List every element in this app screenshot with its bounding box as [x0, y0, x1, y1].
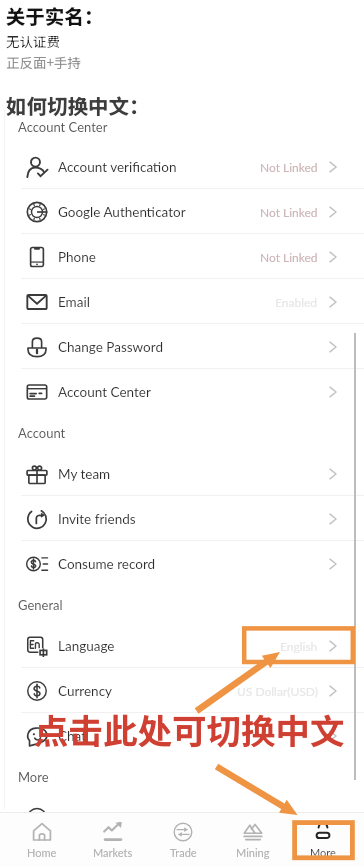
button[interactable]: Google Authenticator — [0, 189, 364, 234]
staticText: Phone — [58, 249, 96, 265]
button[interactable]: Chat — [0, 713, 364, 758]
staticText: 点击此处可切换中文 — [34, 704, 345, 754]
staticText: About — [58, 810, 95, 826]
staticText: Account Center — [58, 384, 151, 400]
staticText: Home — [27, 846, 57, 859]
staticText: Change Password — [58, 339, 163, 355]
staticText: More — [18, 769, 49, 785]
button[interactable]: Trade — [148, 813, 218, 867]
button[interactable]: Account verification — [0, 144, 364, 189]
staticText: Language — [58, 638, 115, 654]
staticText: Not Linked — [260, 250, 318, 264]
button[interactable]: Markets — [77, 813, 148, 867]
staticText: Account — [18, 425, 66, 441]
staticText: Not Linked — [260, 160, 318, 174]
button[interactable]: Currency — [0, 668, 364, 713]
staticText: Invite friends — [58, 511, 136, 527]
staticText: Account Center — [18, 119, 108, 135]
staticText: Markets — [93, 846, 133, 859]
button[interactable]: Account Center — [0, 369, 364, 414]
staticText: Google Authenticator — [58, 204, 186, 220]
staticText: Consume record — [58, 556, 156, 572]
staticText: English — [280, 639, 318, 653]
staticText: Not Linked — [260, 205, 318, 219]
staticText: Email — [58, 294, 90, 310]
staticText: 无认证费 — [6, 31, 60, 51]
button[interactable]: Email — [0, 279, 364, 324]
staticText: My team — [58, 466, 111, 482]
button[interactable]: Mining — [218, 813, 288, 867]
staticText: US Dollar(USD) — [237, 684, 318, 698]
staticText: 如何切换中文： — [6, 90, 150, 120]
button[interactable]: Invite friends — [0, 496, 364, 541]
staticText: Chat — [58, 728, 87, 744]
staticText: Mining — [236, 846, 270, 859]
button[interactable]: Home — [6, 813, 77, 867]
staticText: Account verification — [58, 159, 177, 175]
staticText: Currency — [58, 683, 113, 699]
button[interactable]: Phone — [0, 234, 364, 279]
staticText: 关于实名： — [6, 1, 104, 29]
button[interactable]: More — [288, 813, 358, 867]
staticText: Enabled — [275, 295, 318, 309]
button[interactable]: Consume record — [0, 541, 364, 586]
staticText: More — [310, 846, 336, 859]
button[interactable]: About — [0, 795, 364, 840]
button[interactable]: Language — [0, 623, 364, 668]
staticText: Trade — [170, 846, 197, 859]
button[interactable]: Change Password — [0, 324, 364, 369]
staticText: General — [18, 597, 63, 613]
button[interactable]: My team — [0, 451, 364, 496]
staticText: 正反面+手持 — [6, 52, 81, 72]
